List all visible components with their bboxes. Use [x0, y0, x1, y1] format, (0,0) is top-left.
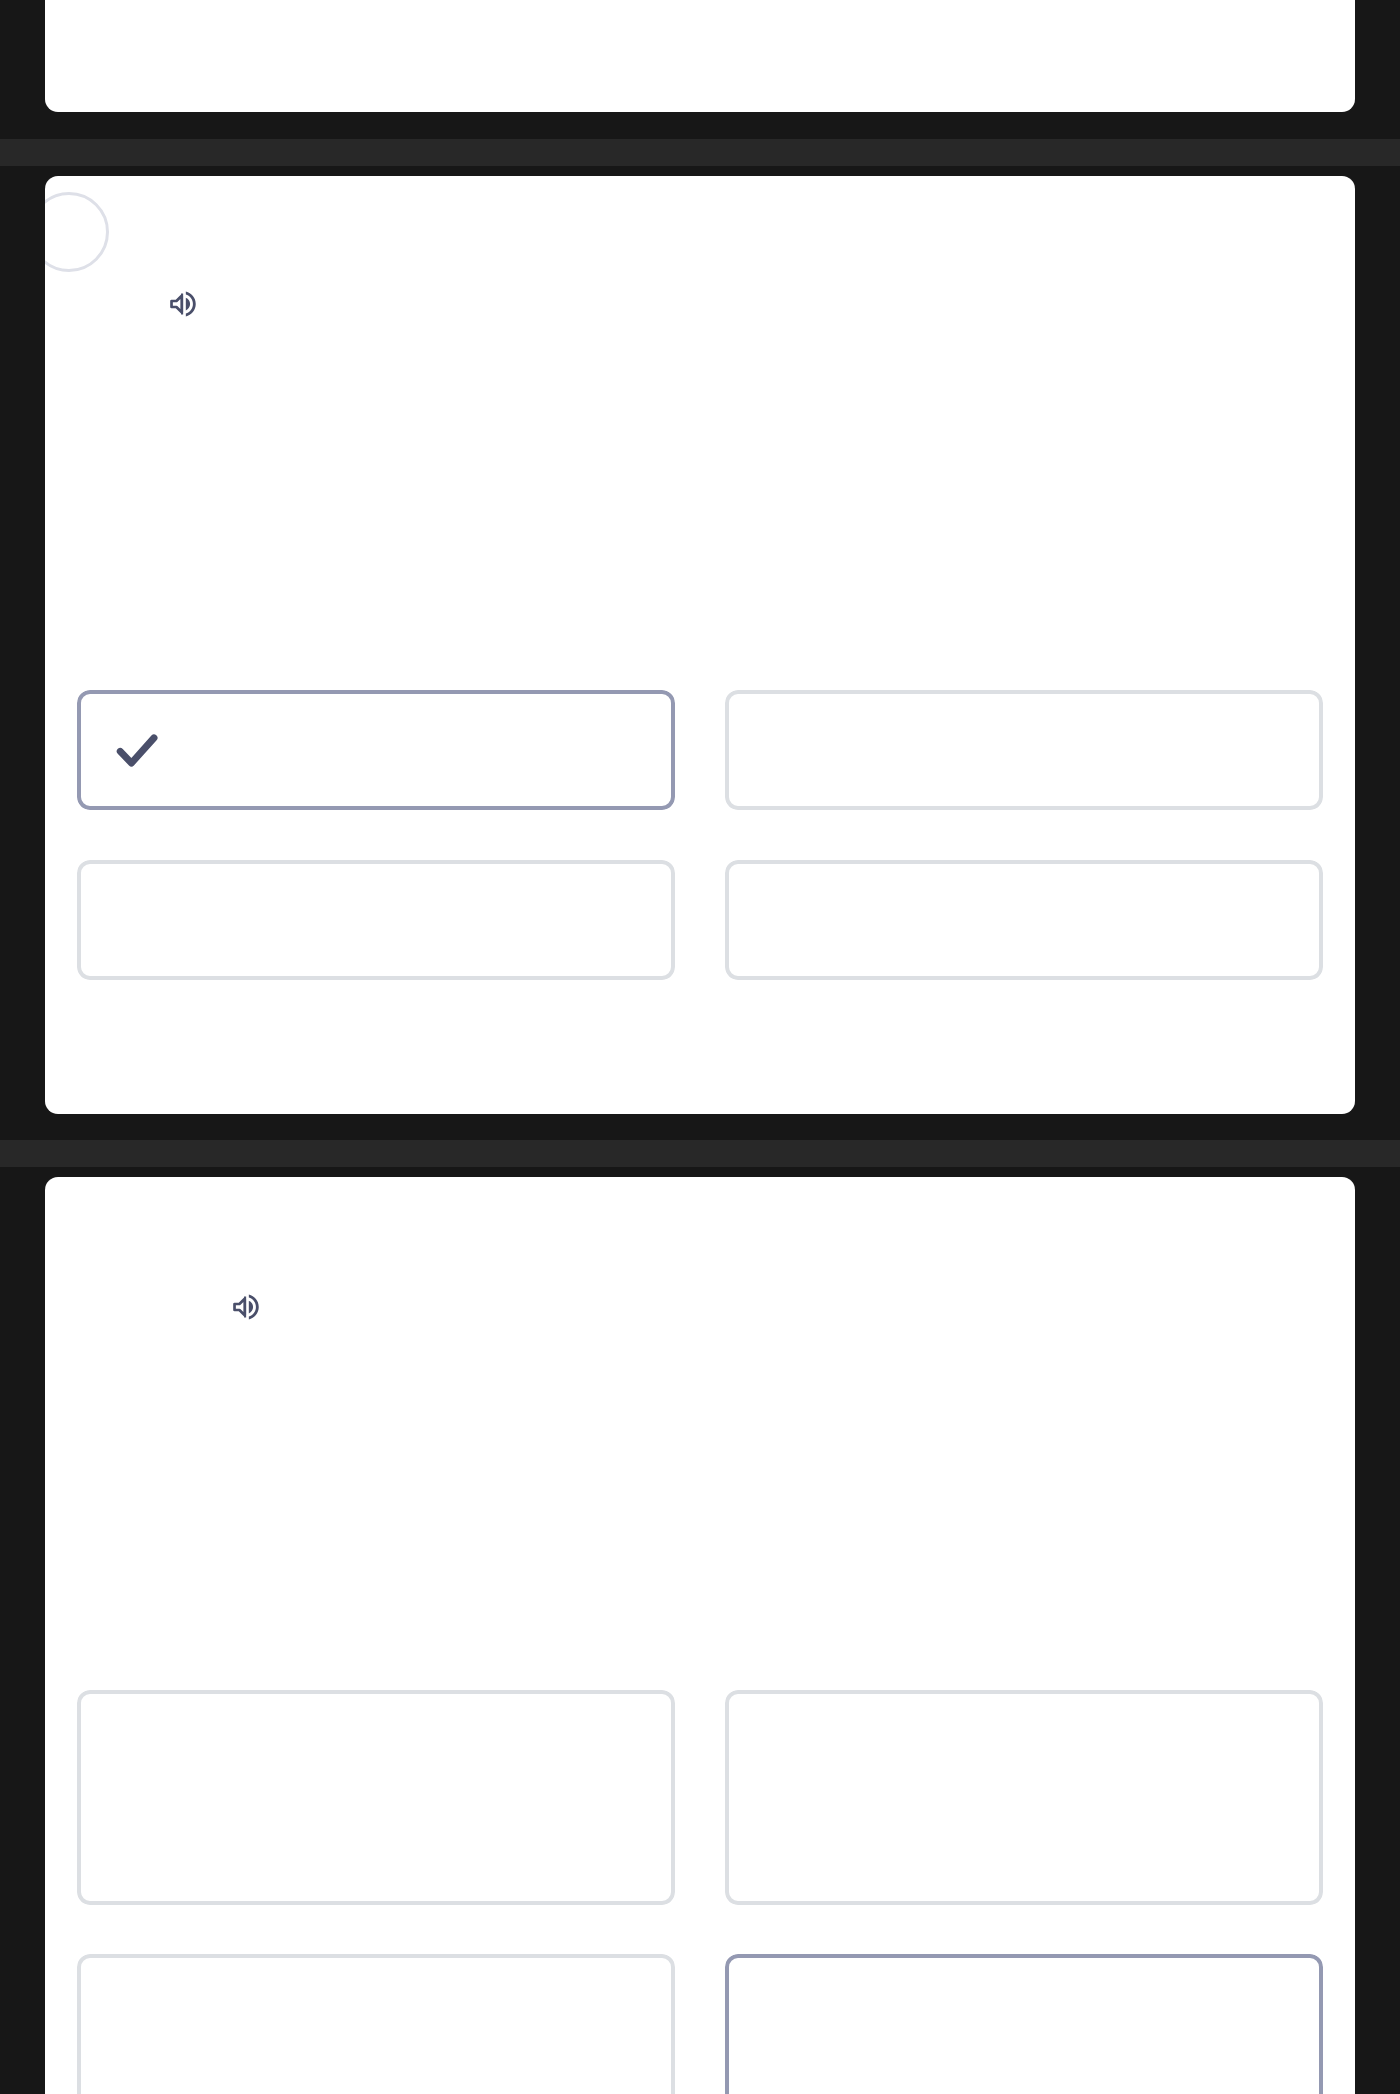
- button[interactable]: Answer option: [77, 1954, 675, 2094]
- button[interactable]: Play pronunciation: [206, 1267, 286, 1347]
- button[interactable]: Answer option: [725, 1954, 1323, 2094]
- button[interactable]: Answer option: [725, 1690, 1323, 1905]
- button[interactable]: Answer option: [725, 860, 1323, 980]
- button[interactable]: Profile: [45, 192, 109, 272]
- button[interactable]: Play pronunciation: [143, 264, 223, 344]
- button[interactable]: Answer option: [77, 860, 675, 980]
- button[interactable]: Answer option: [725, 690, 1323, 810]
- button[interactable]: Answer option: [77, 1690, 675, 1905]
- button[interactable]: Answer option: [77, 690, 675, 810]
